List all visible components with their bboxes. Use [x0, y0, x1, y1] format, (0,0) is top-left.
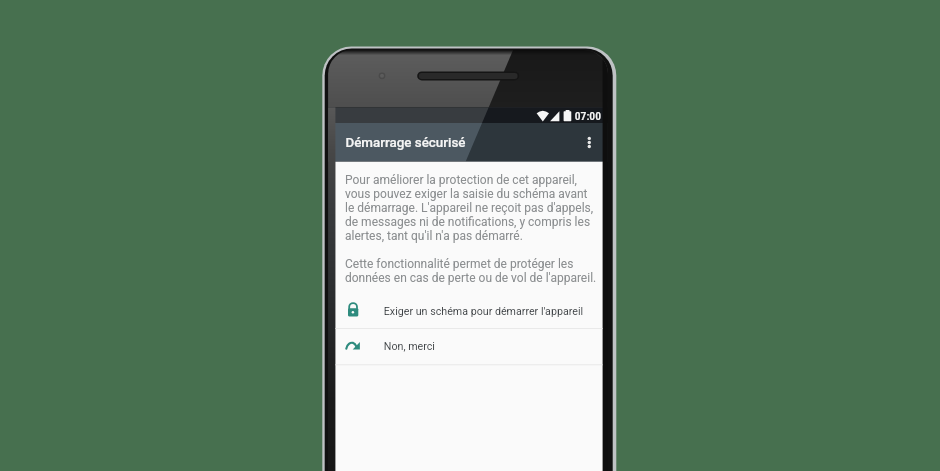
button[interactable]: Exiger un schéma pour démarrer l'apparei…: [335, 296, 602, 328]
button[interactable]: More options: [578, 126, 602, 160]
button[interactable]: Non, merci: [335, 329, 602, 365]
button[interactable]: Démarrage sécurisé: [345, 123, 465, 162]
